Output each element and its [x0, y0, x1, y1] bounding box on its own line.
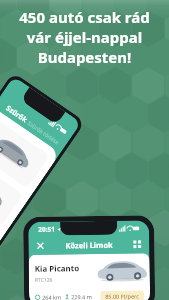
button[interactable]: Up [0, 156, 23, 227]
button[interactable]: Filter [133, 240, 141, 248]
button[interactable]: Up [0, 117, 50, 189]
staticText: 450 autó csak rád vár éjjel-nappal Budap… [0, 7, 169, 67]
staticText: Kia Picanto [35, 262, 80, 274]
staticText: Szűrők [4, 104, 29, 125]
staticText: 229.4 m [71, 293, 92, 300]
staticText: RTC126 [35, 277, 53, 284]
staticText: 20:51 [38, 225, 55, 234]
staticText: 85.00 Ft/perc [105, 292, 139, 300]
button[interactable]: Close [35, 241, 45, 251]
staticText: Közeli Limok [65, 240, 113, 250]
staticText: Szűrők törlése [26, 119, 61, 146]
staticText: 264 km [42, 293, 61, 300]
button[interactable]: 85.00 Ft/perc [105, 292, 139, 300]
